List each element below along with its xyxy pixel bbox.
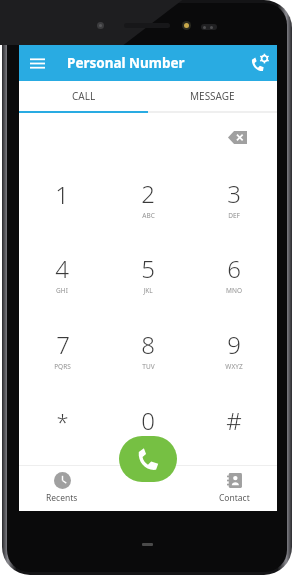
button[interactable]: Recents xyxy=(19,465,105,511)
staticText: CALL xyxy=(72,89,96,103)
button[interactable]: 5 xyxy=(105,236,191,311)
staticText: Contact xyxy=(219,492,250,504)
staticText: Personal Number xyxy=(67,54,185,72)
button[interactable]: 9 xyxy=(191,311,277,387)
staticText: 3 xyxy=(227,177,241,210)
button[interactable]: Backspace xyxy=(222,122,252,152)
staticText: 1 xyxy=(55,178,69,211)
staticText: 0 xyxy=(141,404,155,437)
staticText: # xyxy=(226,404,242,437)
button[interactable]: 8 xyxy=(105,311,191,387)
button[interactable]: Call xyxy=(119,436,177,482)
staticText: 7 xyxy=(56,328,70,361)
staticText: PQRS xyxy=(54,362,71,371)
staticText: 5 xyxy=(141,252,155,285)
staticText: MNO xyxy=(226,286,242,295)
button[interactable]: # xyxy=(191,387,277,463)
staticText: MESSAGE xyxy=(190,89,235,103)
staticText: 6 xyxy=(227,252,241,285)
staticText: TUV xyxy=(142,362,155,371)
staticText: WXYZ xyxy=(225,362,243,371)
button[interactable]: Contact xyxy=(191,465,277,511)
staticText: 8 xyxy=(141,328,155,361)
button[interactable]: 3 xyxy=(191,161,277,236)
button[interactable]: CALL xyxy=(19,81,148,111)
button[interactable]: 2 xyxy=(105,161,191,236)
staticText: Recents xyxy=(46,492,78,504)
button[interactable]: Open navigation menu xyxy=(24,50,50,76)
button[interactable]: * xyxy=(19,387,105,463)
button[interactable]: MESSAGE xyxy=(148,81,277,111)
staticText: DEF xyxy=(228,211,240,220)
button[interactable]: Call settings xyxy=(246,50,272,76)
button[interactable]: 6 xyxy=(191,236,277,311)
button[interactable]: 4 xyxy=(19,236,105,311)
staticText: GHI xyxy=(56,286,68,295)
staticText: 9 xyxy=(227,328,241,361)
staticText: 2 xyxy=(141,177,155,210)
button[interactable]: 7 xyxy=(19,311,105,387)
staticText: 4 xyxy=(55,252,69,285)
button[interactable]: 0 xyxy=(105,387,191,463)
staticText: ABC xyxy=(142,211,155,220)
staticText: JKL xyxy=(143,286,153,295)
staticText: * xyxy=(56,406,69,436)
button[interactable]: 1 xyxy=(19,161,105,236)
